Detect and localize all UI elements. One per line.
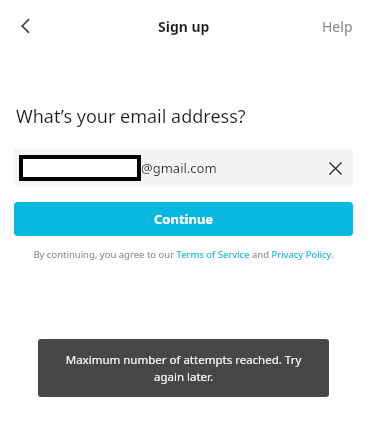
button[interactable]: Clear [317,150,353,186]
staticText: By continuing, you agree to our Terms of… [22,248,345,261]
button[interactable]: Help [308,5,367,48]
staticText: Help [322,17,353,36]
staticText: @gmail.com [141,159,217,177]
button[interactable]: @gmail.com [14,149,353,186]
button[interactable]: By continuing, you agree to our Terms of… [22,248,345,261]
staticText: What’s your email address? [16,104,246,129]
staticText: Sign up [158,17,210,36]
staticText: Maximum number of attempts reached. Try … [58,352,309,384]
button[interactable]: Continue [14,202,353,236]
staticText: Continue [154,210,214,228]
button[interactable]: Back [4,4,48,48]
